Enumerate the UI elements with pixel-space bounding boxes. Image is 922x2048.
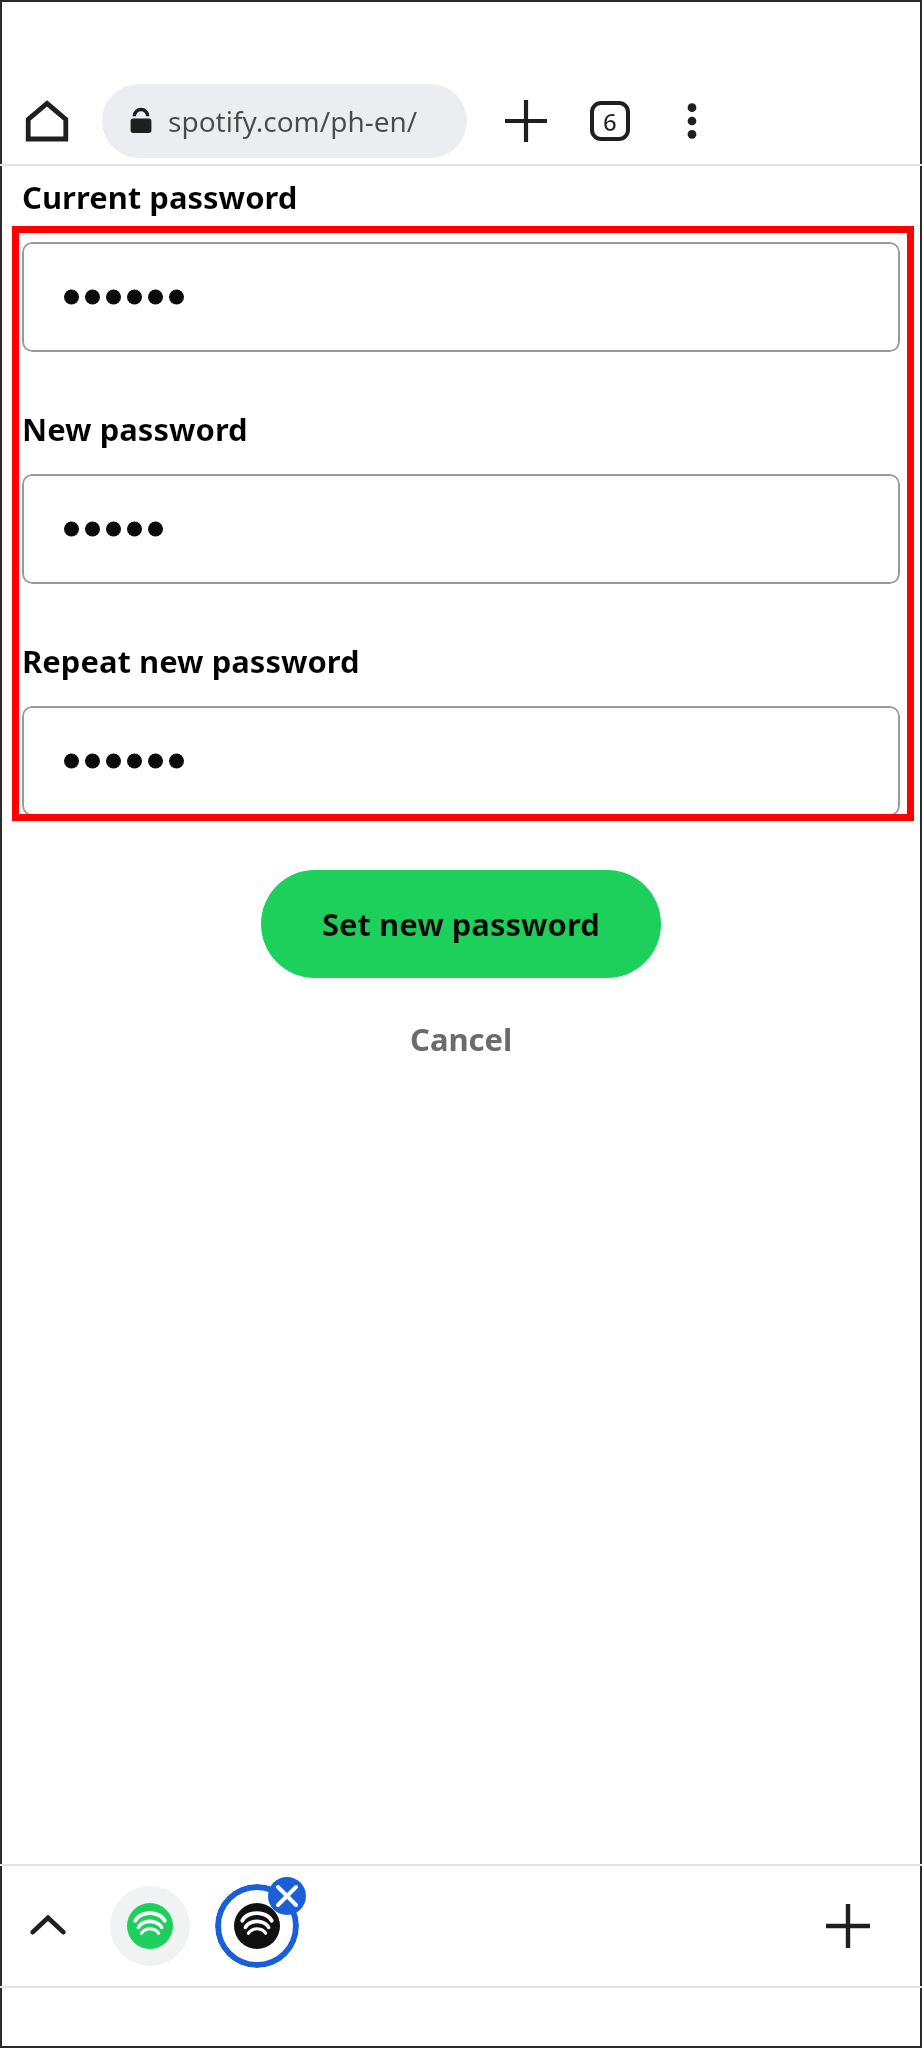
staticText: Current password — [22, 176, 298, 218]
button[interactable]: Password input — [22, 474, 900, 584]
staticText: Set new password — [322, 903, 600, 945]
button[interactable]: Set new password — [261, 870, 661, 978]
staticText: Cancel — [410, 1018, 513, 1060]
button[interactable]: Spotify tab, close — [202, 1871, 312, 1981]
button[interactable]: Home — [12, 86, 82, 156]
button[interactable]: Expand — [6, 1884, 90, 1968]
button[interactable]: Spotify app — [102, 1878, 198, 1974]
button[interactable]: Cancel — [384, 1008, 539, 1070]
button[interactable]: spotify.com/ph-en/account/c — [102, 84, 467, 158]
button[interactable]: Tabs — [573, 84, 647, 158]
button[interactable]: Password input — [22, 706, 900, 816]
staticText: New password — [22, 408, 248, 450]
button[interactable]: More options — [655, 84, 729, 158]
staticText: 6 — [603, 105, 617, 138]
staticText: spotify.com/ph-en/account/c — [168, 102, 467, 140]
button[interactable]: Password input — [22, 242, 900, 352]
button[interactable]: New tab — [489, 84, 563, 158]
staticText: Repeat new password — [22, 640, 360, 682]
button[interactable]: Add — [800, 1878, 896, 1974]
